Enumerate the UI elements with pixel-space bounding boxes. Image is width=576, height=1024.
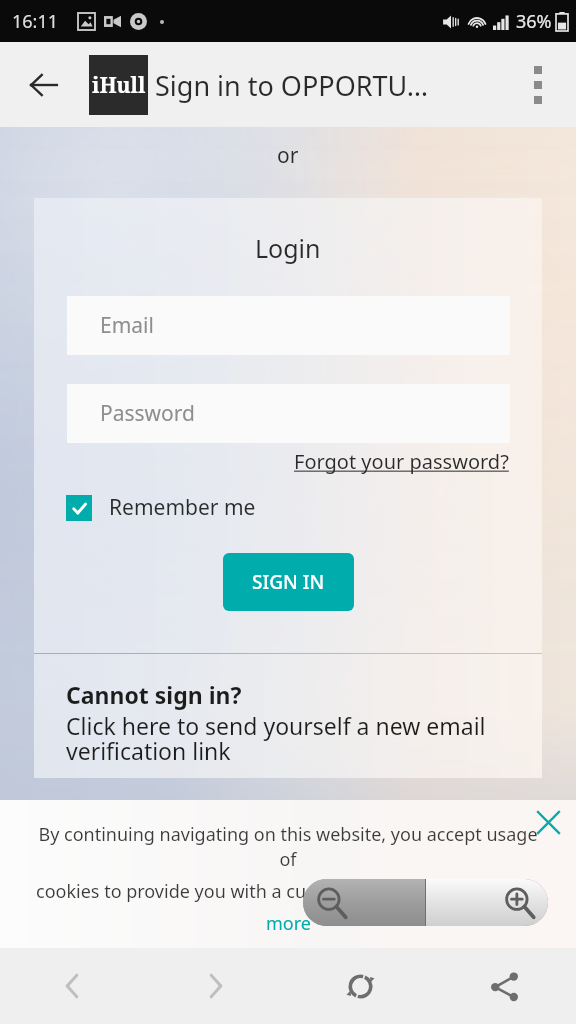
staticText: 16:11 <box>12 9 59 34</box>
staticText: Password <box>100 399 195 428</box>
staticText: Remember me <box>109 493 256 522</box>
button[interactable]: Forward <box>144 948 288 1024</box>
button[interactable]: Learn <box>491 879 540 904</box>
button[interactable]: Zoom in <box>426 879 548 926</box>
staticText: By continuing navigating on this website… <box>30 822 546 872</box>
staticText: Email <box>100 311 154 340</box>
button[interactable]: Zoom out <box>303 879 425 926</box>
staticText: Login <box>255 231 321 265</box>
button[interactable]: Close <box>530 804 566 840</box>
button[interactable]: Back <box>16 57 72 113</box>
staticText: Sign in to OPPORTU… <box>155 67 429 104</box>
staticText: SIGN IN <box>252 569 325 595</box>
staticText: iHull <box>92 71 146 100</box>
button[interactable]: SIGN IN <box>223 553 354 611</box>
staticText: cookies to provide you with a customized… <box>36 879 491 904</box>
button[interactable]: Refresh <box>288 948 432 1024</box>
button[interactable]: more <box>266 911 311 936</box>
staticText: or <box>277 141 299 170</box>
button[interactable]: Back <box>0 948 144 1024</box>
button[interactable]: Cannot sign in? <box>66 679 242 710</box>
button[interactable]: Password <box>67 384 510 443</box>
button[interactable]: Click here to send yourself a new email … <box>66 710 486 767</box>
staticText: Forgot your password? <box>294 448 509 475</box>
button[interactable]: More options <box>510 57 566 113</box>
button[interactable]: Email <box>67 296 510 355</box>
staticText: 36% <box>516 9 552 34</box>
button[interactable]: Forgot your password? <box>294 448 509 475</box>
button[interactable]: Share <box>432 948 576 1024</box>
button[interactable]: Remember me <box>66 493 256 522</box>
